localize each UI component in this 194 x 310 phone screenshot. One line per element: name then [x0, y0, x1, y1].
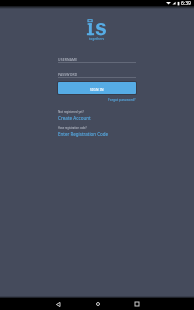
staticText: USERNAME — [58, 57, 78, 62]
staticText: togethers — [89, 36, 105, 40]
staticText: Have registration code? — [58, 126, 87, 130]
button[interactable]: Forgot password? — [108, 97, 136, 101]
button[interactable]: Recent apps — [117, 298, 156, 310]
staticText: 6:39 — [181, 0, 191, 6]
staticText: Enter Registration Code — [58, 131, 109, 137]
staticText: SIGN IN — [90, 87, 104, 91]
staticText: PASSWORD — [58, 72, 78, 77]
staticText: Not registered yet? — [58, 110, 84, 114]
button[interactable]: SIGN IN — [58, 82, 136, 94]
button[interactable]: Have registration code? — [58, 126, 109, 137]
button[interactable]: Back — [39, 298, 78, 310]
button[interactable]: Home — [78, 298, 117, 310]
button[interactable]: Not registered yet? — [58, 110, 91, 121]
staticText: Create Account — [58, 115, 91, 121]
